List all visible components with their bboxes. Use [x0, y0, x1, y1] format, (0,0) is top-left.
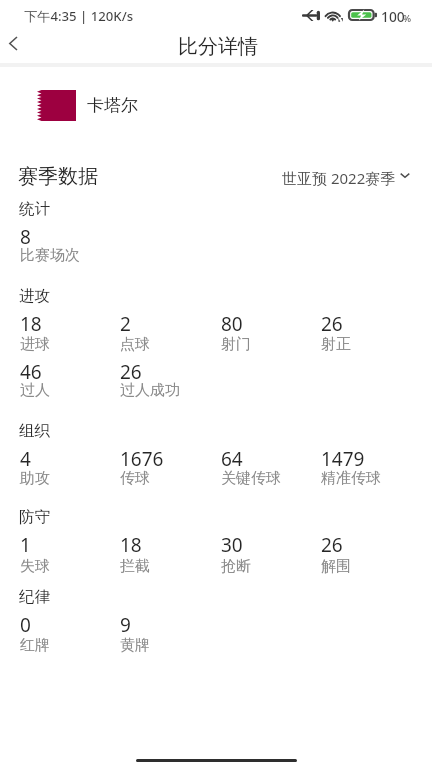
staticText: 26: [321, 532, 343, 558]
staticText: 过人成功: [120, 381, 180, 400]
staticText: 100: [381, 7, 405, 26]
staticText: 拦截: [120, 557, 150, 576]
staticText: 失球: [20, 557, 50, 576]
staticText: 1479: [321, 446, 365, 472]
staticText: 助攻: [20, 469, 50, 488]
staticText: 0: [20, 612, 31, 638]
staticText: 组织: [19, 421, 50, 441]
staticText: 卡塔尔: [87, 95, 138, 116]
staticText: 进攻: [19, 286, 50, 306]
staticText: 精准传球: [321, 469, 381, 488]
staticText: 纪律: [19, 587, 50, 607]
staticText: 过人: [20, 381, 50, 400]
staticText: 4: [20, 446, 31, 472]
staticText: 比赛场次: [20, 246, 80, 265]
staticText: 红牌: [20, 636, 50, 655]
staticText: 18: [20, 311, 42, 337]
staticText: 点球: [120, 335, 150, 354]
button[interactable]: Back: [0, 23, 42, 63]
staticText: 射门: [221, 335, 251, 354]
staticText: 抢断: [221, 557, 251, 576]
staticText: 1676: [120, 446, 164, 472]
button[interactable]: 卡塔尔: [0, 77, 432, 133]
staticText: 黄牌: [120, 636, 150, 655]
staticText: 下午4:35 | 120K/s: [24, 7, 134, 25]
staticText: 2: [120, 311, 131, 337]
button[interactable]: 世亚预 2022赛季: [278, 164, 414, 188]
staticText: 26: [120, 359, 142, 385]
staticText: 射正: [321, 335, 351, 354]
staticText: 赛季数据: [18, 164, 98, 189]
staticText: 8: [20, 224, 31, 250]
staticText: 18: [120, 532, 142, 558]
staticText: %: [403, 12, 412, 25]
staticText: 关键传球: [221, 469, 281, 488]
staticText: 进球: [20, 335, 50, 354]
staticText: 30: [221, 532, 243, 558]
staticText: 46: [20, 359, 42, 385]
staticText: 64: [221, 446, 243, 472]
staticText: 1: [20, 532, 31, 558]
staticText: 世亚预 2022赛季: [282, 168, 396, 188]
staticText: 统计: [19, 199, 50, 219]
staticText: 传球: [120, 469, 150, 488]
staticText: 9: [120, 612, 131, 638]
staticText: 26: [321, 311, 343, 337]
staticText: 80: [221, 311, 243, 337]
staticText: 解围: [321, 557, 351, 576]
staticText: 比分详情: [178, 34, 258, 59]
staticText: 防守: [19, 507, 50, 527]
